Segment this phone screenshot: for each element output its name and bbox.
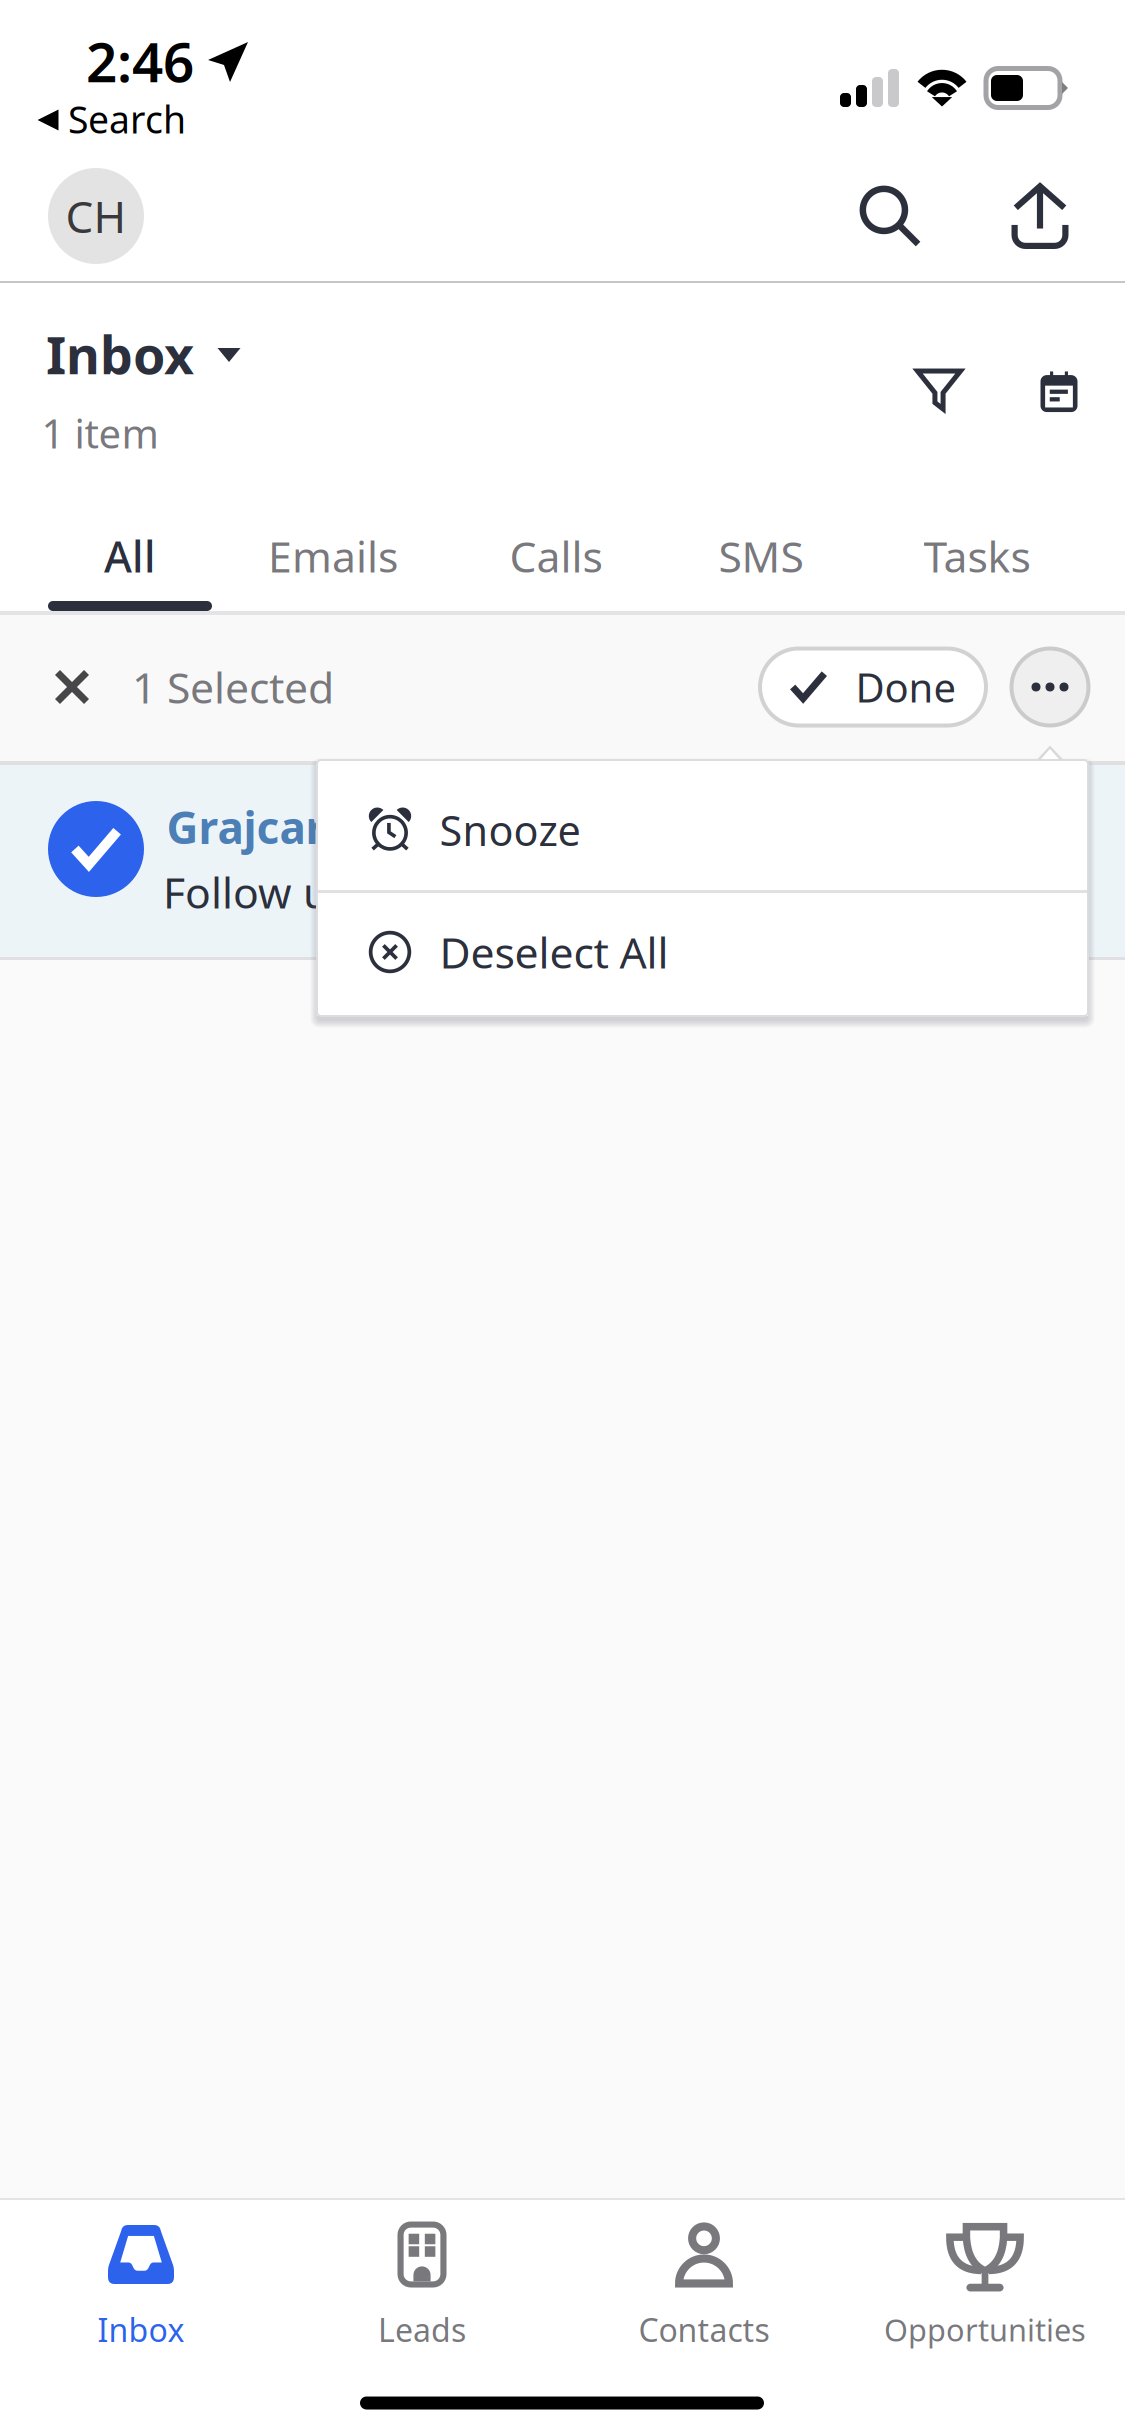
staticText: Opportunities	[884, 2309, 1086, 2350]
button[interactable]: SMS	[658, 500, 863, 611]
button[interactable]: Snooze	[317, 761, 1088, 890]
staticText: Tasks	[923, 528, 1030, 584]
staticText: CH	[65, 187, 126, 245]
button[interactable]: Leads	[281, 2212, 562, 2367]
button[interactable]: Filter	[893, 344, 985, 436]
staticText: Inbox	[46, 319, 194, 389]
button[interactable]: Done	[760, 648, 986, 725]
button[interactable]: Contacts	[563, 2212, 844, 2367]
button[interactable]: Deselect All	[317, 893, 1088, 1015]
button[interactable]: Search	[838, 164, 942, 268]
staticText: Inbox	[97, 2308, 184, 2351]
staticText: All	[104, 528, 156, 584]
staticText: Contacts	[638, 2308, 769, 2351]
button[interactable]: Inbox	[0, 2212, 281, 2367]
button[interactable]: More options	[1011, 648, 1088, 725]
staticText: Done	[855, 660, 956, 713]
staticText: Grajcar	[166, 798, 325, 856]
button[interactable]: Cancel selection	[28, 643, 116, 731]
staticText: 1 item	[41, 406, 158, 459]
staticText: 1 Selected	[132, 659, 334, 715]
staticText: SMS	[718, 528, 803, 584]
staticText: Leads	[378, 2308, 466, 2351]
button[interactable]: Account	[48, 168, 144, 264]
button[interactable]: Grajcar	[0, 765, 1125, 957]
staticText: Follow up	[163, 864, 355, 920]
staticText: Deselect All	[439, 924, 668, 980]
button[interactable]: Emails	[230, 500, 435, 611]
button[interactable]: Calendar	[1013, 345, 1105, 437]
button[interactable]: Opportunities	[844, 2212, 1125, 2367]
button[interactable]: Calls	[453, 500, 658, 611]
button[interactable]: Inbox	[48, 314, 260, 392]
staticText: Snooze	[439, 803, 580, 857]
staticText: Search	[68, 94, 186, 144]
staticText: 2:46	[86, 25, 194, 97]
staticText: Calls	[509, 528, 602, 584]
button[interactable]: Tasks	[874, 500, 1079, 611]
staticText: Emails	[268, 528, 398, 584]
button[interactable]: Share	[988, 164, 1092, 268]
button[interactable]: All	[27, 500, 232, 611]
